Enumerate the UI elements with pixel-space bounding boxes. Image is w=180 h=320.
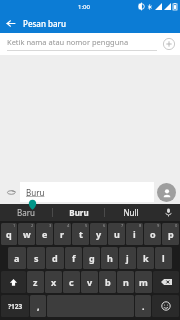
button[interactable]: u <box>108 223 125 245</box>
button[interactable]: o <box>144 223 161 245</box>
staticText: 2 <box>31 223 34 228</box>
staticText: l <box>162 252 165 264</box>
staticText: 8 <box>139 223 142 228</box>
button[interactable]: d <box>46 247 64 269</box>
staticText: b <box>105 276 111 288</box>
staticText: Buru <box>69 207 89 218</box>
staticText: q <box>6 228 12 240</box>
staticText: t <box>79 228 83 240</box>
button[interactable]: c <box>63 271 80 293</box>
button[interactable]: e <box>36 223 53 245</box>
button[interactable]: Backspace <box>153 271 179 293</box>
staticText: s <box>34 252 39 264</box>
staticText: 7 <box>121 223 124 228</box>
staticText: . <box>142 300 145 312</box>
staticText: j <box>126 252 129 264</box>
button[interactable]: Buru <box>53 204 104 221</box>
staticText: 5 <box>85 223 88 228</box>
button[interactable]: Voice input <box>156 204 180 221</box>
staticText: y <box>96 228 102 240</box>
staticText: 9 <box>157 223 160 228</box>
button[interactable]: v <box>81 271 98 293</box>
button[interactable]: p <box>162 223 179 245</box>
button[interactable]: z <box>27 271 44 293</box>
staticText: 1:00 <box>78 3 90 11</box>
staticText: m <box>139 276 148 288</box>
button[interactable]: Shift <box>1 271 26 293</box>
button[interactable]: Back <box>0 13 20 33</box>
button[interactable]: x <box>45 271 62 293</box>
staticText: 4 <box>67 223 70 228</box>
staticText: Baru <box>17 207 35 218</box>
staticText: a <box>14 252 20 264</box>
staticText: v <box>87 276 93 288</box>
button[interactable]: l <box>155 247 172 269</box>
button[interactable]: m <box>135 271 152 293</box>
button[interactable]: Baru <box>0 204 52 221</box>
button[interactable]: . <box>135 295 151 317</box>
button[interactable]: g <box>83 247 100 269</box>
button[interactable]: , <box>30 295 46 317</box>
button[interactable]: Buru <box>20 182 154 202</box>
staticText: o <box>150 228 156 240</box>
button[interactable]: y <box>90 223 107 245</box>
button[interactable]: ?123 <box>1 295 29 317</box>
staticText: p <box>168 228 174 240</box>
button[interactable]: r <box>54 223 71 245</box>
button[interactable]: f <box>65 247 82 269</box>
button[interactable]: w <box>18 223 35 245</box>
staticText: e <box>42 228 48 240</box>
button[interactable]: i <box>126 223 143 245</box>
staticText: ?123 <box>8 302 23 311</box>
button[interactable]: k <box>137 247 154 269</box>
staticText: k <box>143 252 149 264</box>
button[interactable]: s <box>27 247 45 269</box>
staticText: i <box>133 228 136 240</box>
staticText: g <box>89 252 95 264</box>
staticText: u <box>114 228 120 240</box>
button[interactable]: Send to contact <box>157 183 176 202</box>
button[interactable]: Add recipient <box>162 37 176 51</box>
button[interactable]: n <box>117 271 134 293</box>
staticText: d <box>52 252 58 264</box>
staticText: 1 <box>13 223 16 228</box>
staticText: Null <box>123 207 139 218</box>
staticText: c <box>69 276 74 288</box>
staticText: 6 <box>103 223 106 228</box>
staticText: n <box>123 276 129 288</box>
staticText: z <box>33 276 38 288</box>
staticText: x <box>51 276 57 288</box>
staticText: w <box>23 228 31 240</box>
button[interactable]: b <box>99 271 116 293</box>
staticText: Ketik nama atau nomor pengguna <box>7 37 129 47</box>
staticText: 3 <box>49 223 52 228</box>
staticText: Pesan baru <box>23 18 66 29</box>
button[interactable]: Attach <box>4 185 18 199</box>
staticText: r <box>60 228 65 240</box>
staticText: 0 <box>175 223 178 228</box>
button[interactable]: q <box>1 223 17 245</box>
button[interactable]: t <box>72 223 89 245</box>
staticText: h <box>107 252 113 264</box>
button[interactable]: a <box>8 247 26 269</box>
staticText: Buru <box>26 187 45 198</box>
staticText: , <box>37 300 40 312</box>
button[interactable]: Null <box>105 204 156 221</box>
button[interactable]: j <box>119 247 136 269</box>
button[interactable]: Emoji <box>152 295 179 317</box>
button[interactable]: h <box>101 247 118 269</box>
staticText: f <box>72 252 76 264</box>
